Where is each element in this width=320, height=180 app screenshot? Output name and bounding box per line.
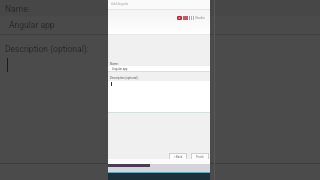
staticText: Description (optional):: [110, 76, 139, 79]
button[interactable]: [108, 81, 210, 112]
staticText: Name:: [110, 62, 119, 65]
button[interactable]: Angular app: [108, 66, 210, 71]
staticText: Add Angular: [111, 2, 129, 6]
staticText: Finish: [196, 155, 204, 158]
staticText: < Back: [174, 155, 183, 158]
staticText: Angular app: [9, 20, 55, 30]
other: Product logo: [177, 16, 205, 20]
staticText: Name:: [5, 4, 30, 14]
button[interactable]: < Back: [169, 153, 187, 160]
staticText: Description (optional):: [5, 44, 89, 54]
staticText: Studio: [195, 16, 205, 20]
button[interactable]: Finish: [191, 153, 209, 160]
staticText: Angular app: [112, 67, 128, 70]
